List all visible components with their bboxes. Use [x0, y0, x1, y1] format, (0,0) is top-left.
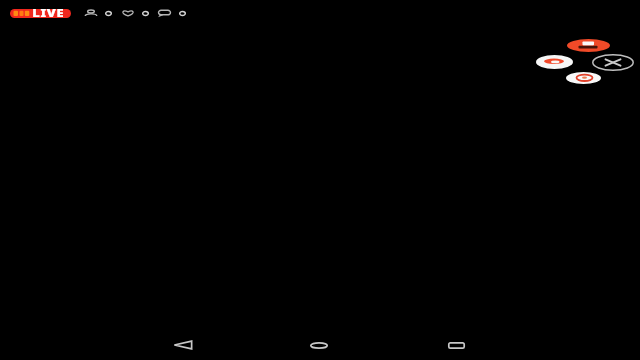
- button[interactable]: Live: [10, 9, 71, 18]
- button[interactable]: Recents: [410, 328, 502, 360]
- button[interactable]: Home: [273, 328, 365, 360]
- staticText: LIVE: [32, 6, 65, 20]
- button[interactable]: Comments: [158, 6, 186, 20]
- button[interactable]: Close: [592, 54, 634, 71]
- button[interactable]: Record: [566, 72, 601, 84]
- button[interactable]: Viewers: [85, 6, 112, 20]
- button[interactable]: Switch camera: [567, 39, 610, 52]
- button[interactable]: Back: [137, 328, 229, 360]
- button[interactable]: Likes: [121, 6, 149, 20]
- button[interactable]: Beauty filter: [536, 55, 573, 69]
